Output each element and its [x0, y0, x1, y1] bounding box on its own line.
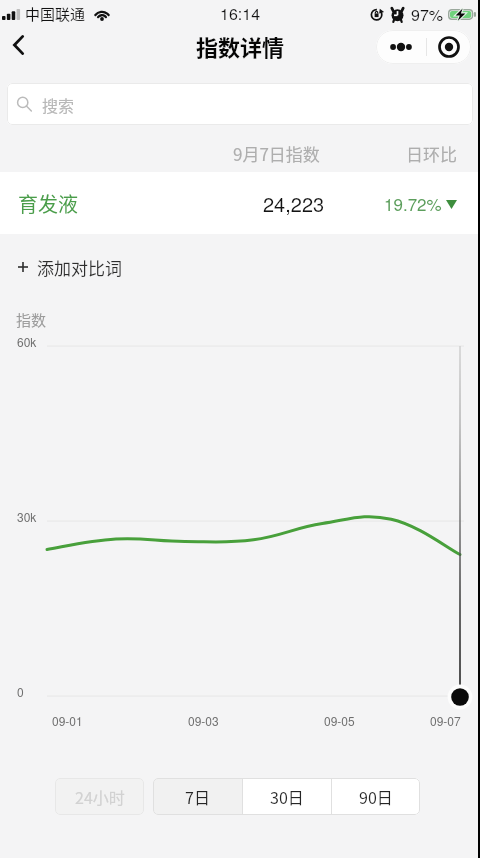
staticText: 90日	[359, 785, 393, 808]
button[interactable]: 育发液	[0, 172, 480, 234]
staticText: 09-07	[430, 712, 461, 729]
staticText: 指数详情	[196, 30, 285, 62]
staticText: 97%	[411, 3, 444, 26]
staticText: 9月7日指数	[233, 141, 320, 166]
staticText: 09-05	[324, 712, 355, 729]
staticText: 7日	[185, 785, 210, 808]
button[interactable]: Back	[0, 25, 40, 69]
staticText: 0	[17, 683, 24, 700]
staticText: 中国联通	[25, 3, 86, 25]
staticText: 24,223	[263, 189, 325, 218]
staticText: 16:14	[220, 2, 261, 25]
staticText: 指数	[16, 309, 47, 331]
staticText: 添加对比词	[37, 255, 122, 280]
staticText: 搜索	[42, 93, 75, 116]
staticText: 日环比	[406, 141, 457, 166]
staticText: 30日	[270, 785, 304, 808]
staticText: 09-01	[52, 712, 83, 729]
button[interactable]: 90日	[332, 778, 419, 815]
staticText: 09-03	[188, 712, 219, 729]
button[interactable]: 30日	[243, 778, 331, 815]
staticText: 育发液	[18, 189, 78, 218]
staticText: 30k	[17, 508, 37, 525]
button[interactable]: 添加对比词	[18, 248, 122, 286]
button[interactable]: 搜索	[7, 83, 473, 125]
button[interactable]: Close mini program	[427, 30, 470, 64]
button[interactable]: More options	[376, 30, 426, 64]
staticText: 60k	[17, 333, 37, 350]
staticText: 19.72%	[384, 191, 442, 215]
button[interactable]: 24小时	[55, 778, 144, 815]
staticText: 24小时	[75, 785, 125, 808]
button[interactable]: 7日	[153, 778, 242, 815]
